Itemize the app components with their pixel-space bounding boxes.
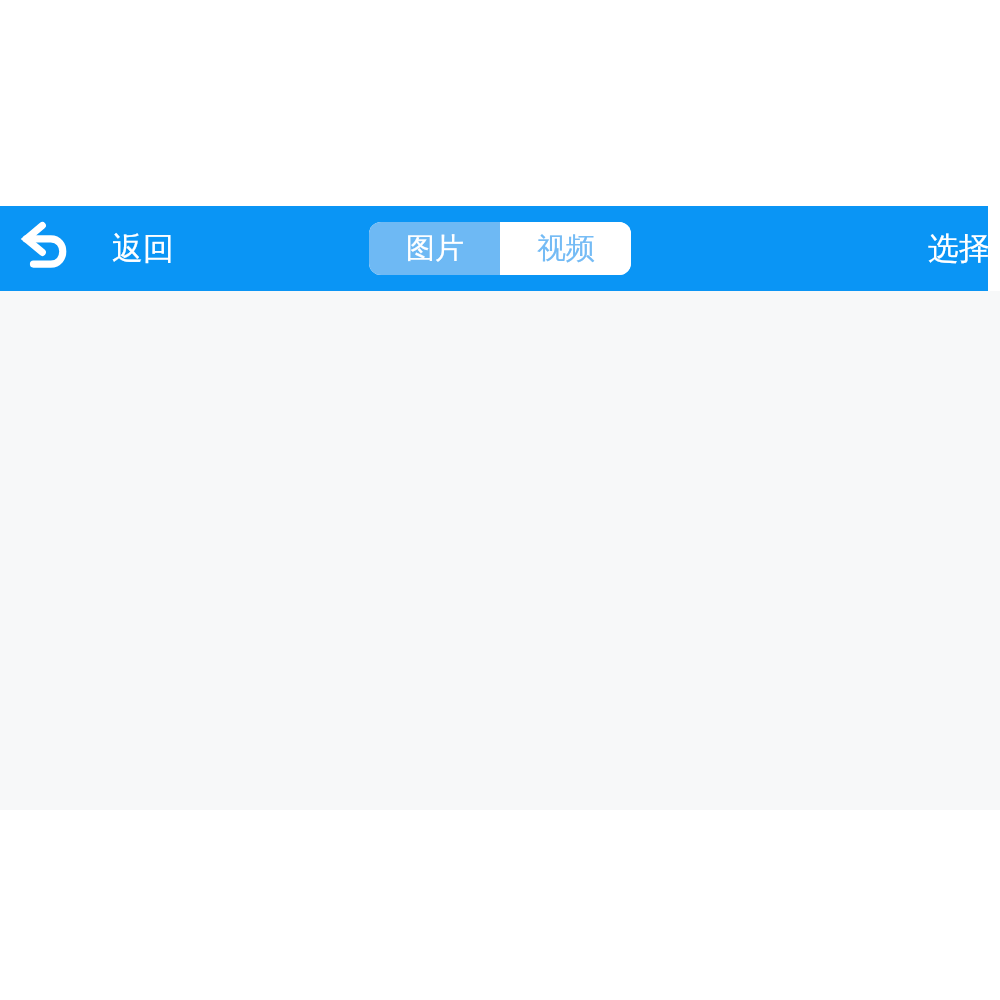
staticText: 返回 <box>112 229 174 268</box>
button[interactable]: 选择 <box>916 206 1000 291</box>
staticText: 选择 <box>928 229 990 268</box>
staticText: 视频 <box>537 230 595 267</box>
button[interactable]: 视频 <box>500 222 631 275</box>
button[interactable]: 返回 <box>100 206 186 291</box>
button[interactable]: Back <box>14 206 82 291</box>
button[interactable]: 图片 <box>369 222 500 275</box>
staticText: 图片 <box>406 230 464 267</box>
